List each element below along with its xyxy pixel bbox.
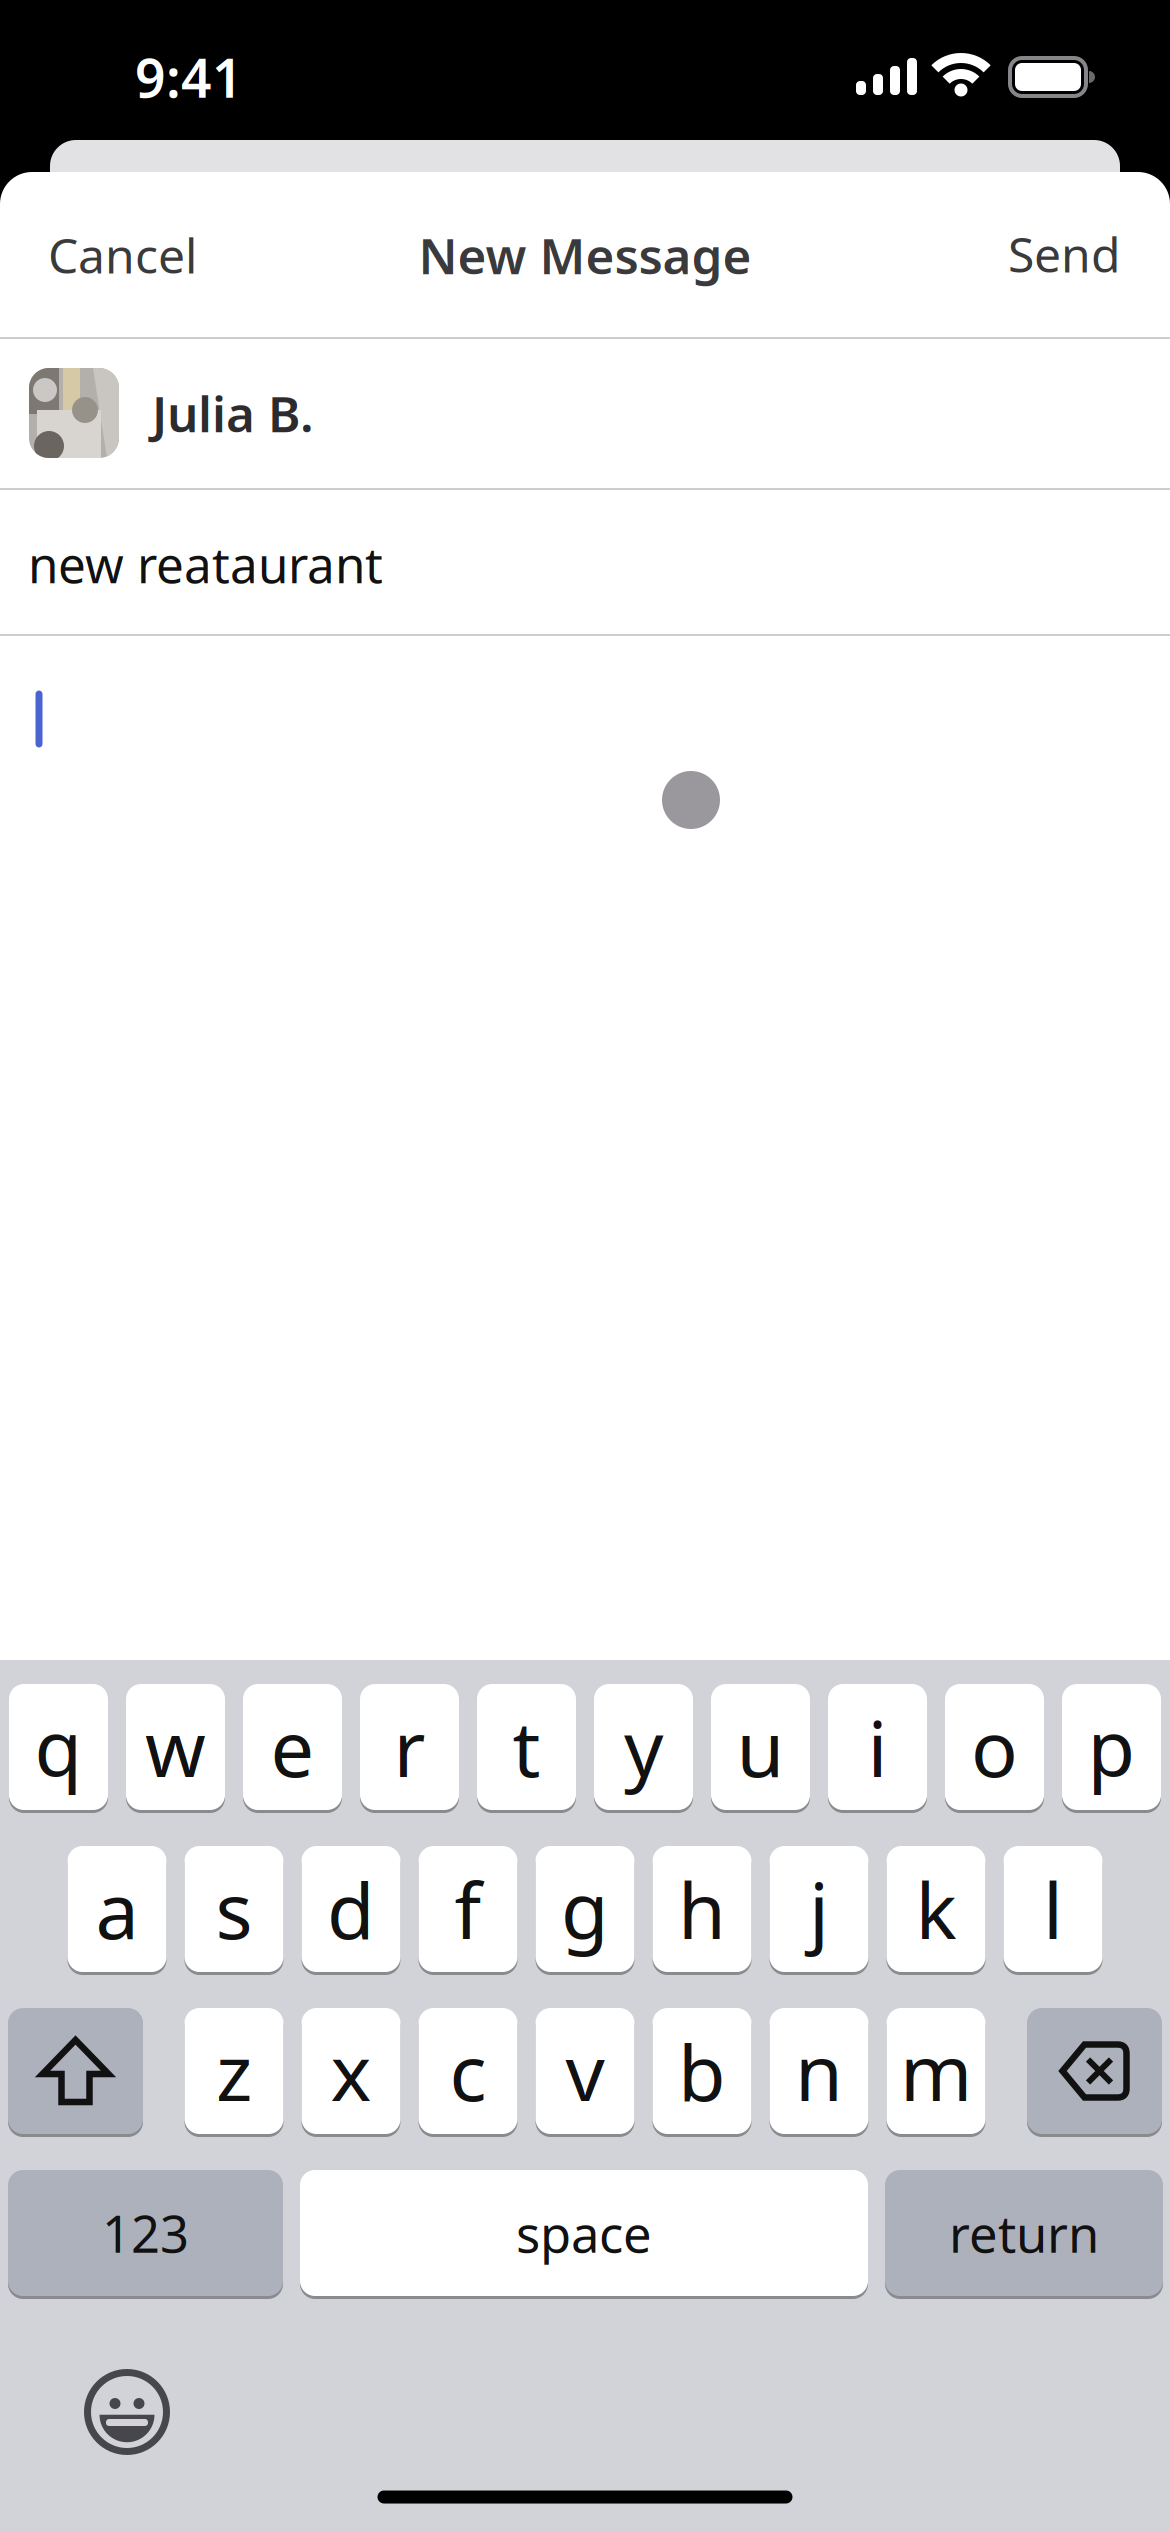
button[interactable]: m <box>886 2006 985 2135</box>
button[interactable]: Shift <box>8 2006 143 2135</box>
button[interactable]: u <box>711 1682 810 1811</box>
staticText: m <box>900 2020 972 2122</box>
button[interactable]: y <box>594 1682 693 1811</box>
button[interactable]: z <box>184 2006 283 2135</box>
staticText: x <box>330 2020 371 2122</box>
button[interactable]: Delete <box>1027 2006 1162 2135</box>
staticText: return <box>949 2199 1099 2267</box>
staticText: w <box>145 1696 206 1798</box>
button[interactable]: x <box>301 2006 400 2135</box>
button[interactable]: 123 <box>8 2168 283 2297</box>
staticText: p <box>1087 1696 1135 1798</box>
button[interactable]: d <box>301 1844 400 1973</box>
staticText: new reataurant <box>28 531 383 597</box>
staticText: Cancel <box>48 223 197 287</box>
button[interactable]: i <box>828 1682 927 1811</box>
staticText: 9:41 <box>135 42 243 112</box>
staticText: u <box>736 1696 784 1798</box>
staticText: t <box>512 1696 540 1798</box>
staticText: z <box>216 2020 252 2122</box>
staticText: h <box>678 1858 726 1960</box>
button[interactable]: Cancel <box>48 223 197 287</box>
button[interactable]: p <box>1062 1682 1161 1811</box>
staticText: c <box>449 2020 486 2122</box>
button[interactable]: v <box>535 2006 634 2135</box>
staticText: d <box>327 1858 375 1960</box>
staticText: v <box>565 2020 604 2122</box>
button[interactable]: f <box>418 1844 517 1973</box>
staticText: New Message <box>418 222 751 288</box>
staticText: a <box>95 1858 138 1960</box>
staticText: Julia B. <box>152 380 314 446</box>
staticText: b <box>678 2020 726 2122</box>
staticText: o <box>971 1696 1018 1798</box>
staticText: g <box>561 1858 609 1960</box>
button[interactable]: h <box>652 1844 751 1973</box>
button[interactable]: e <box>243 1682 342 1811</box>
staticText: r <box>393 1696 425 1798</box>
button[interactable]: a <box>67 1844 166 1973</box>
staticText: 123 <box>102 2199 189 2267</box>
staticText: q <box>34 1696 82 1798</box>
staticText: y <box>624 1696 663 1798</box>
button[interactable]: l <box>1003 1844 1102 1973</box>
button[interactable]: j <box>769 1844 868 1973</box>
button[interactable]: o <box>945 1682 1044 1811</box>
button[interactable]: s <box>184 1844 283 1973</box>
staticText: space <box>516 2199 652 2267</box>
button[interactable]: b <box>652 2006 751 2135</box>
staticText: s <box>215 1858 252 1960</box>
button[interactable]: g <box>535 1844 634 1973</box>
button[interactable]: Send <box>1008 222 1121 286</box>
button[interactable]: Julia B. <box>29 353 1170 473</box>
staticText: e <box>270 1696 314 1798</box>
staticText: l <box>1043 1858 1063 1960</box>
button[interactable]: t <box>477 1682 576 1811</box>
staticText: Send <box>1008 222 1121 286</box>
staticText: i <box>867 1696 887 1798</box>
staticText: n <box>795 2020 843 2122</box>
staticText: k <box>915 1858 956 1960</box>
button[interactable]: k <box>886 1844 985 1973</box>
staticText: j <box>809 1858 829 1960</box>
button[interactable]: r <box>360 1682 459 1811</box>
staticText: f <box>454 1858 481 1960</box>
button[interactable]: n <box>769 2006 868 2135</box>
button[interactable]: space <box>300 2168 868 2297</box>
button[interactable]: return <box>885 2168 1163 2297</box>
button[interactable]: c <box>418 2006 517 2135</box>
button[interactable]: w <box>126 1682 225 1811</box>
button[interactable]: q <box>9 1682 108 1811</box>
button[interactable]: Emoji <box>87 2372 166 2451</box>
